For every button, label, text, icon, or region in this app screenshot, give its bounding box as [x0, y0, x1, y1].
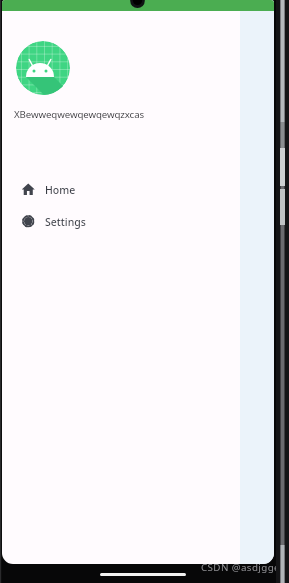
staticText: Home: [45, 183, 76, 197]
staticText: CSDN @asdjggesxj: [201, 561, 289, 574]
button[interactable]: Settings: [2, 207, 234, 236]
staticText: Settings: [45, 215, 86, 229]
button[interactable]: Home: [2, 175, 234, 204]
staticText: XBewweqwewqewqewqzxcas: [14, 108, 145, 121]
